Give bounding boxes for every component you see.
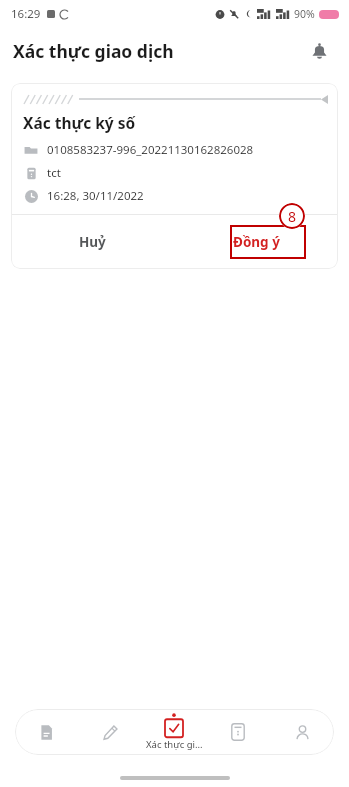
staticText: Xác thực giao dịch xyxy=(13,39,174,63)
staticText: Xác thực gi... xyxy=(146,738,203,751)
button[interactable]: Documents xyxy=(15,709,78,755)
staticText: 16:28, 30/11/2022 xyxy=(47,188,144,204)
staticText: 16:29 xyxy=(11,6,41,22)
staticText: 8 xyxy=(288,207,297,226)
staticText: tct xyxy=(47,165,61,181)
button[interactable]: Đồng ý xyxy=(174,215,338,269)
staticText: Đồng ý xyxy=(233,233,280,251)
button[interactable]: Token xyxy=(206,709,270,755)
staticText: 0108583237-996_20221130162826028 xyxy=(47,142,254,158)
staticText: Xác thực ký số xyxy=(23,112,136,133)
button[interactable]: Profile xyxy=(270,709,334,755)
staticText: 90% xyxy=(294,7,315,21)
button[interactable]: Xác thực gi... xyxy=(142,713,206,751)
staticText: Huỷ xyxy=(79,233,106,251)
button[interactable]: Huỷ xyxy=(11,215,174,269)
button[interactable]: Notifications xyxy=(302,34,336,68)
button[interactable]: Sign xyxy=(78,709,142,755)
